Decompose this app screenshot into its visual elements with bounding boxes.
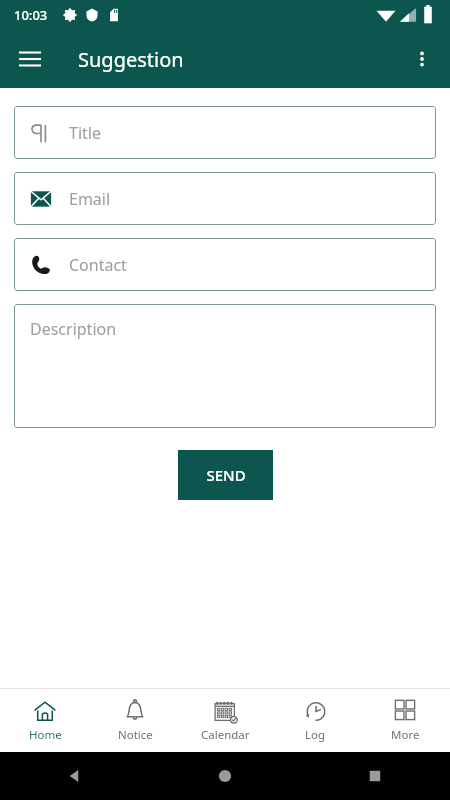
- button[interactable]: Contact: [14, 238, 436, 291]
- staticText: Log: [305, 727, 326, 743]
- staticText: 10:03: [14, 6, 48, 24]
- button[interactable]: SEND: [178, 450, 273, 500]
- button[interactable]: Title: [14, 106, 436, 159]
- staticText: Email: [69, 188, 111, 210]
- button[interactable]: Back: [0, 752, 150, 800]
- staticText: Contact: [69, 254, 127, 276]
- button[interactable]: More options: [400, 37, 444, 81]
- button[interactable]: Calendar: [180, 689, 270, 752]
- button[interactable]: Home: [0, 689, 90, 752]
- button[interactable]: Recent apps: [300, 752, 450, 800]
- button[interactable]: Email: [14, 172, 436, 225]
- staticText: SEND: [206, 465, 246, 485]
- staticText: More: [391, 727, 420, 743]
- button[interactable]: Log: [270, 689, 360, 752]
- staticText: Notice: [118, 727, 153, 743]
- staticText: Suggestion: [78, 46, 184, 73]
- button[interactable]: More: [360, 689, 450, 752]
- staticText: Title: [69, 122, 101, 144]
- staticText: Calendar: [201, 727, 250, 743]
- button[interactable]: Description: [14, 304, 436, 428]
- button[interactable]: Notice: [90, 689, 180, 752]
- button[interactable]: Home: [150, 752, 300, 800]
- staticText: Description: [30, 318, 117, 340]
- staticText: Home: [29, 727, 62, 743]
- button[interactable]: Open navigation menu: [8, 37, 52, 81]
